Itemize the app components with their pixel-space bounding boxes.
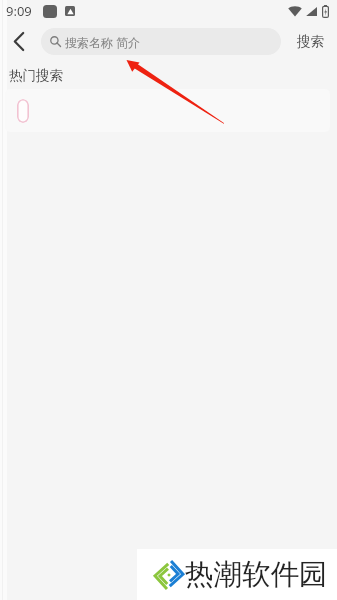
staticText: 搜索名称 简介 bbox=[65, 34, 141, 50]
button[interactable]: 搜索 bbox=[288, 26, 332, 56]
button[interactable]: Back bbox=[4, 26, 34, 56]
staticText: 热门搜索 bbox=[9, 67, 63, 84]
button[interactable]: 热门搜索标签 bbox=[17, 99, 29, 123]
button[interactable]: 搜索名称 简介 bbox=[41, 28, 281, 55]
staticText: 搜索 bbox=[297, 33, 324, 50]
staticText: 9:09 bbox=[6, 2, 32, 20]
staticText: 热潮软件园 bbox=[185, 557, 328, 593]
